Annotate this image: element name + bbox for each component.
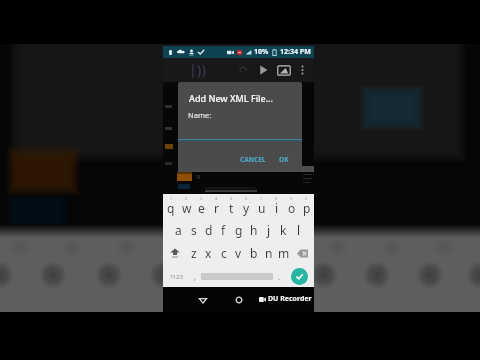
staticText: e <box>198 200 205 216</box>
staticText: p <box>303 200 311 216</box>
staticText: 7 <box>260 196 263 201</box>
staticText: z <box>191 245 197 261</box>
button[interactable]: j <box>261 221 276 239</box>
staticText: g <box>235 222 243 238</box>
staticText: l <box>297 222 301 238</box>
button[interactable]: Run <box>255 60 271 80</box>
button[interactable]: Save <box>275 60 293 80</box>
button[interactable]: d <box>201 221 216 239</box>
button[interactable]: Back <box>195 292 210 307</box>
button[interactable]: . <box>273 266 285 287</box>
staticText: 6 <box>245 196 248 201</box>
button[interactable]: n <box>261 244 276 262</box>
button[interactable]: Undo <box>236 62 250 78</box>
staticText: t <box>229 200 234 216</box>
button[interactable]: 4 <box>209 196 224 218</box>
button[interactable]: ?123 <box>163 266 189 287</box>
staticText: b <box>250 245 258 261</box>
button[interactable]: g <box>231 221 246 239</box>
button[interactable]: s <box>186 221 201 239</box>
staticText: c <box>221 245 227 261</box>
button[interactable]: OK <box>274 152 294 166</box>
button[interactable]: , <box>189 266 201 287</box>
staticText: j <box>267 222 271 238</box>
button[interactable]: b <box>246 244 261 262</box>
button[interactable]: Backspace <box>291 244 314 262</box>
button[interactable]: Space <box>201 266 273 287</box>
button[interactable]: Shift <box>163 244 186 262</box>
button[interactable]: 1 <box>163 196 179 218</box>
button[interactable]: k <box>276 221 291 239</box>
staticText: n <box>265 245 273 261</box>
staticText: a <box>175 222 182 238</box>
staticText: CANCEL <box>240 155 266 164</box>
button[interactable]: a <box>171 221 186 239</box>
staticText: y <box>243 200 250 216</box>
staticText: 2 <box>185 196 188 201</box>
staticText: f <box>221 222 226 238</box>
button[interactable]: x <box>201 244 216 262</box>
button[interactable]: f <box>216 221 231 239</box>
staticText: 12:34 PM <box>280 47 311 57</box>
button[interactable]: Home <box>231 292 246 307</box>
staticText: . <box>278 271 281 282</box>
button[interactable]: c <box>216 244 231 262</box>
button[interactable]: 2 <box>179 196 194 218</box>
staticText: 9 <box>290 196 293 201</box>
staticText: ?123 <box>170 273 183 281</box>
staticText: 5 <box>230 196 233 201</box>
button[interactable]: 0 <box>299 196 314 218</box>
button[interactable]: 8 <box>269 196 284 218</box>
staticText: Add New XML File... <box>189 92 273 104</box>
button[interactable]: 3 <box>194 196 209 218</box>
staticText: 10% <box>254 47 269 57</box>
staticText: OK <box>279 155 289 164</box>
button[interactable]: l <box>291 221 306 239</box>
staticText: 0 <box>305 196 308 201</box>
staticText: o <box>288 200 296 216</box>
button[interactable]: 9 <box>284 196 299 218</box>
button[interactable]: m <box>276 244 291 262</box>
staticText: s <box>191 222 197 238</box>
staticText: h <box>250 222 258 238</box>
staticText: k <box>280 222 287 238</box>
staticText: r <box>214 200 219 216</box>
button[interactable]: 6 <box>239 196 254 218</box>
staticText: i <box>275 200 279 216</box>
staticText: m <box>278 245 290 261</box>
staticText: |)) <box>189 60 207 79</box>
staticText: q <box>167 200 175 216</box>
button[interactable]: z <box>186 244 201 262</box>
staticText: 1 <box>170 196 173 201</box>
staticText: 8 <box>275 196 278 201</box>
staticText: 3 <box>200 196 203 201</box>
staticText: w <box>182 200 192 216</box>
button[interactable]: More options <box>296 61 308 79</box>
staticText: x <box>205 245 212 261</box>
button[interactable]: 7 <box>254 196 269 218</box>
button[interactable]: Enter <box>285 266 314 287</box>
staticText: Name: <box>188 110 212 120</box>
staticText: d <box>205 222 213 238</box>
staticText: , <box>194 271 197 282</box>
button[interactable]: 5 <box>224 196 239 218</box>
button[interactable]: v <box>231 244 246 262</box>
staticText: 4 <box>215 196 218 201</box>
button[interactable]: CANCEL <box>236 152 270 166</box>
staticText: u <box>258 200 266 216</box>
staticText: v <box>235 245 242 261</box>
staticText: DU Recorder <box>268 294 312 304</box>
button[interactable]: h <box>246 221 261 239</box>
